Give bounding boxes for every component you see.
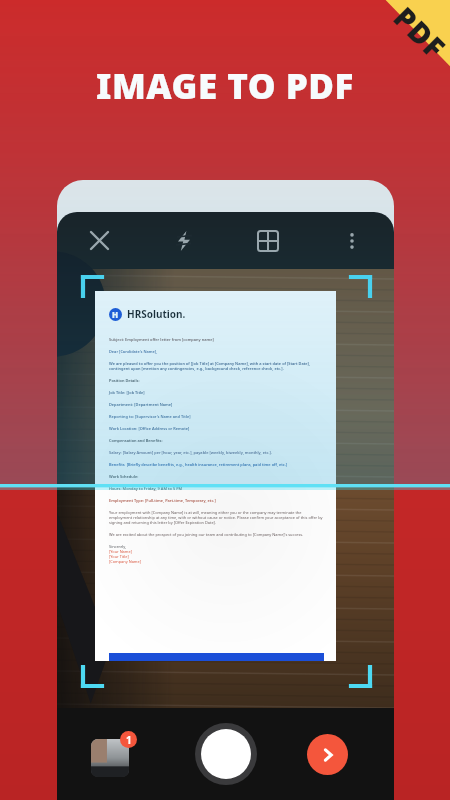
button[interactable]: More options [310,212,394,269]
staticText: Salary: [Salary Amount] per [hour, year,… [109,450,272,455]
staticText: We are excited about the prospect of you… [109,532,304,537]
staticText: Work Schedule: [109,474,139,479]
staticText: HRSolution. [127,307,186,321]
button[interactable]: Batch mode [226,212,310,269]
staticText: Employment Type: [Full-time, Part-time, … [109,498,216,503]
button[interactable]: Capture [195,723,257,785]
staticText: [Your Title] [109,554,129,559]
staticText: 1 [126,733,132,747]
staticText: PDF [386,0,450,67]
staticText: Compensation and Benefits: [109,438,163,443]
button[interactable]: Close [57,212,142,269]
staticText: Reporting to: [Supervisor's Name and Tit… [109,414,191,419]
staticText: H [112,309,119,320]
staticText: Position Details: [109,378,140,383]
staticText: We are pleased to offer you the position… [109,361,324,371]
staticText: Benefits [Briefly describe benefits, e.g… [109,462,288,467]
staticText: Subject: Employment offer letter from [c… [109,337,214,342]
staticText: [Company Name] [109,559,141,564]
staticText: Dear [Candidate's Name], [109,349,158,354]
staticText: Department: [Department Name] [109,402,173,407]
staticText: [Your Name] [109,549,132,554]
staticText: Work Location: [Office Address or Remote… [109,426,190,431]
staticText: Hours: Monday to Friday, 9 AM to 5 PM [109,486,183,491]
staticText: Job Title: [Job Title] [109,390,145,395]
staticText: Your employment with [Company Name] is a… [109,510,324,525]
button[interactable]: Captured pages [91,731,137,777]
staticText: Sincerely, [109,544,127,549]
button[interactable]: Flash [142,212,226,269]
staticText: IMAGE TO PDF [96,62,354,110]
button[interactable]: Next [307,734,348,775]
